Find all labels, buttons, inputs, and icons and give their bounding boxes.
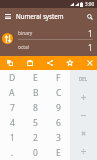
staticText: 9 [56,102,61,114]
button[interactable]: Favorite [62,56,78,70]
button[interactable]: 2 [24,130,47,145]
button[interactable]: Subtract [70,106,97,124]
staticText: A [9,87,15,99]
staticText: 6 [56,117,61,129]
button[interactable]: Copy [2,56,18,70]
staticText: 3:00 [85,1,95,7]
button[interactable]: E [24,70,47,85]
staticText: B [33,87,39,99]
button[interactable]: Close [82,56,97,70]
staticText: C [56,87,62,99]
button[interactable]: D [0,70,24,85]
button[interactable]: Add [70,88,97,106]
button[interactable]: Swap [2,33,13,44]
button[interactable]: Divide [70,142,97,160]
staticText: 1 [88,42,93,53]
staticText: F [56,72,61,84]
button[interactable]: Multiply [70,124,97,142]
staticText: binary [18,30,33,37]
button[interactable]: 1 [0,130,24,145]
button[interactable]: Menu [2,11,13,22]
staticText: . [11,147,14,159]
staticText: 0 [33,147,38,159]
staticText: DEL [79,76,88,82]
button[interactable]: octal [0,40,97,54]
staticText: Numeral system [16,12,64,20]
button[interactable]: 5 [24,115,47,130]
button[interactable]: A [0,85,24,100]
button[interactable]: 8 [24,100,47,115]
staticText: 5 [33,117,38,129]
staticText: 7 [10,102,15,114]
staticText: 8 [33,102,38,114]
staticText: octal [18,44,29,51]
staticText: E [56,147,61,159]
button[interactable]: DEL [70,70,97,88]
button[interactable]: binary [0,26,97,40]
staticText: 3 [56,132,61,144]
staticText: 1 [88,28,93,39]
button[interactable]: F [47,70,70,85]
button[interactable]: 7 [0,100,24,115]
staticText: D [9,72,16,84]
button[interactable]: 4 [0,115,24,130]
staticText: 2 [33,132,38,144]
button[interactable]: Paste [22,56,38,70]
staticText: 4 [10,117,15,129]
button[interactable]: . [0,145,24,160]
staticText: E [33,72,38,84]
button[interactable]: C [47,85,70,100]
button[interactable]: 0 [24,145,47,160]
button[interactable]: 6 [47,115,70,130]
button[interactable]: 9 [47,100,70,115]
button[interactable]: Share [42,56,58,70]
button[interactable]: Search [84,11,95,22]
staticText: 1 [10,132,15,144]
button[interactable]: E [47,145,70,160]
button[interactable]: B [24,85,47,100]
button[interactable]: 3 [47,130,70,145]
